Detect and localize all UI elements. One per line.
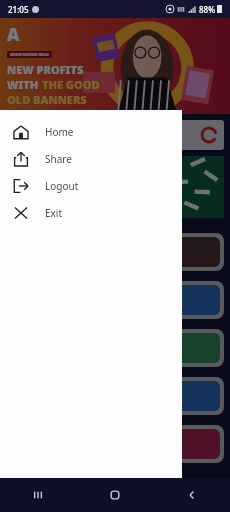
button[interactable]: Spin — [10, 237, 220, 267]
staticText: MONETIZATION IDEAS — [10, 52, 49, 57]
button[interactable]: Withdraw — [10, 429, 220, 459]
staticText: Home — [45, 125, 74, 139]
staticText: Welcome back, please continue. — [14, 130, 134, 141]
staticText: A — [7, 23, 20, 46]
staticText: WITH — [7, 77, 42, 92]
button[interactable]: Welcome back, please continue. — [6, 120, 224, 150]
staticText: 21:05 — [8, 4, 29, 15]
button[interactable]: Visit — [10, 381, 220, 411]
button[interactable]: Logout — [0, 172, 182, 199]
button[interactable]: Share — [0, 145, 182, 172]
button[interactable]: Recent apps — [0, 478, 76, 512]
button[interactable]: Exit — [0, 199, 182, 226]
staticText: Logout — [45, 179, 79, 193]
staticText: Exit — [45, 206, 63, 220]
staticText: THE GOOD — [42, 77, 100, 92]
button[interactable]: Back — [153, 478, 230, 512]
staticText: 88% — [199, 4, 215, 15]
button[interactable]: A — [0, 18, 230, 114]
staticText: OLD BANNERS — [7, 92, 87, 107]
button[interactable]: Home — [76, 478, 153, 512]
staticText: NEW PROFITS — [7, 62, 84, 77]
button[interactable]: Scratch — [10, 285, 220, 315]
button[interactable]: Match — [10, 333, 220, 363]
button[interactable]: Home — [0, 118, 182, 145]
staticText: Share — [45, 152, 72, 166]
